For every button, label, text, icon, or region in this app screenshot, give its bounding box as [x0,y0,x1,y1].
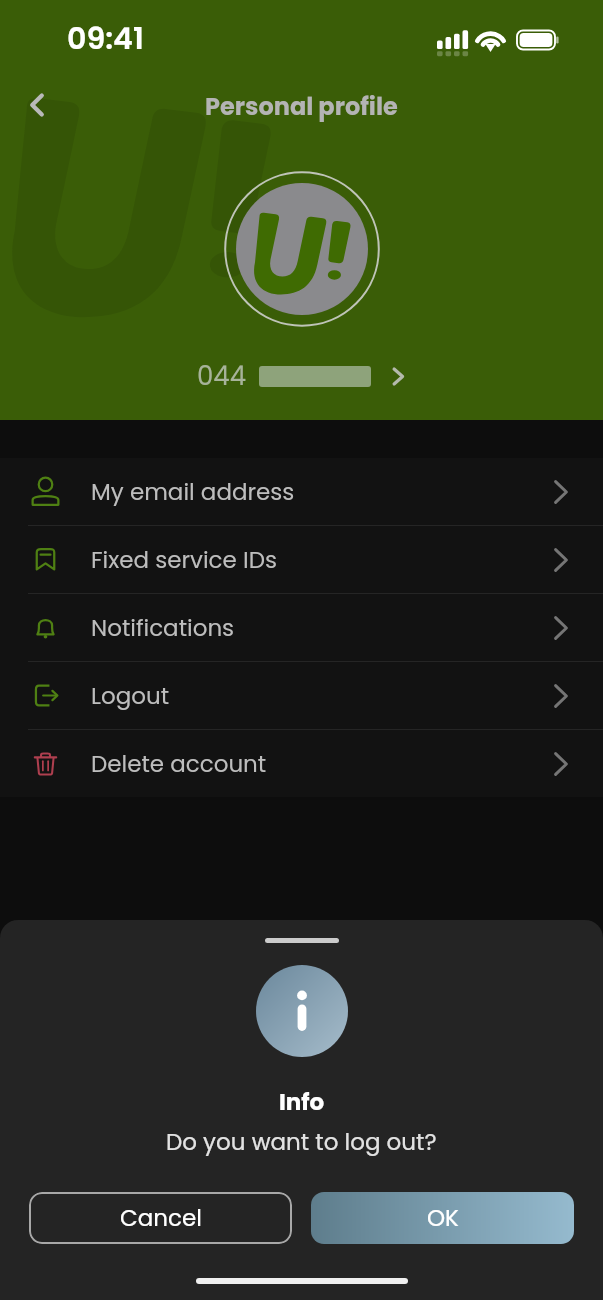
staticText: Cancel [120,1202,202,1234]
button[interactable]: Notifications [0,594,603,661]
staticText: Info [279,1086,325,1118]
staticText: My email address [91,476,295,508]
staticText: Personal profile [205,90,398,124]
button[interactable]: Delete account [0,730,603,797]
button[interactable]: Fixed service IDs [0,526,603,593]
staticText: Logout [91,680,170,712]
button[interactable]: Logout [0,662,603,729]
button[interactable]: My email address [0,458,603,525]
button[interactable]: Back [14,82,60,128]
button[interactable]: OK [311,1192,574,1244]
staticText: 044 [197,358,247,394]
button[interactable]: Cancel [29,1192,292,1244]
staticText: OK [427,1202,459,1234]
staticText: 09:41 [67,18,144,60]
staticText: Notifications [91,612,235,644]
staticText: Do you want to log out? [166,1126,437,1158]
staticText: Delete account [91,748,267,780]
button[interactable]: 044 [191,354,412,398]
staticText: Fixed service IDs [91,544,277,576]
